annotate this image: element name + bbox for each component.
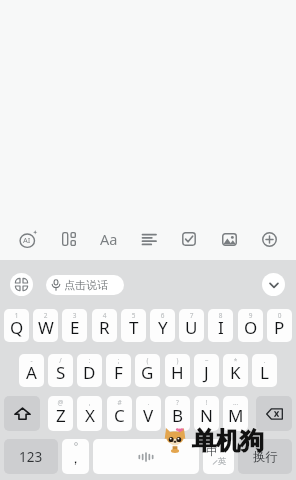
button[interactable]: Backspace <box>256 396 292 431</box>
staticText: M <box>228 404 244 427</box>
button[interactable]: Space <box>93 439 199 474</box>
button[interactable]: . <box>252 354 277 387</box>
button[interactable]: , <box>77 396 102 431</box>
staticText: W <box>38 316 54 339</box>
staticText: ) <box>165 356 190 365</box>
button[interactable]: ! <box>194 396 219 431</box>
staticText: Aa <box>100 229 118 249</box>
button[interactable]: 5 <box>121 309 146 342</box>
button[interactable]: 123 <box>4 439 58 474</box>
button[interactable]: 1 <box>4 309 29 342</box>
staticText: 1 <box>4 311 29 320</box>
staticText: / <box>48 356 73 365</box>
button[interactable]: Switch Chinese English <box>203 439 234 474</box>
staticText: , <box>77 398 102 407</box>
staticText: Q <box>10 316 24 339</box>
staticText: 点击说话 <box>64 278 108 292</box>
staticText: S <box>56 361 66 384</box>
button[interactable]: Font size <box>89 222 129 256</box>
staticText: 7 <box>179 311 204 320</box>
staticText: ， <box>69 450 82 466</box>
staticText: * <box>223 356 248 365</box>
staticText: … <box>223 398 248 407</box>
button[interactable]: ) <box>165 354 190 387</box>
staticText: X <box>85 404 95 427</box>
staticText: ? <box>165 398 190 407</box>
staticText: 中 <box>206 444 217 458</box>
button[interactable]: … <box>223 396 248 431</box>
button[interactable]: Hide keyboard <box>262 273 285 296</box>
button[interactable]: 0 <box>267 309 292 342</box>
staticText: F <box>114 361 123 384</box>
button[interactable]: Shift <box>4 396 40 431</box>
staticText: I <box>218 316 224 339</box>
staticText: # <box>107 398 132 407</box>
staticText: 换行 <box>253 449 278 465</box>
staticText: D <box>83 361 96 384</box>
button[interactable]: Text align <box>129 222 169 256</box>
button[interactable]: 4 <box>92 309 117 342</box>
button[interactable]: Insert image <box>209 222 249 256</box>
staticText: O <box>244 316 258 339</box>
staticText: - <box>19 356 44 365</box>
button[interactable]: 6 <box>150 309 175 342</box>
button[interactable]: Layout <box>48 222 89 256</box>
button[interactable]: AI assistant <box>7 222 48 256</box>
staticText: J <box>204 361 209 384</box>
staticText: . <box>136 398 161 407</box>
staticText: C <box>114 404 125 427</box>
staticText: N <box>200 404 213 427</box>
staticText: 单机狗 <box>192 426 264 456</box>
staticText: 9 <box>238 311 263 320</box>
staticText: 123 <box>19 448 43 466</box>
button[interactable]: 8 <box>208 309 233 342</box>
staticText: 6 <box>150 311 175 320</box>
button[interactable]: ; <box>106 354 131 387</box>
staticText: ( <box>135 356 160 365</box>
staticText: AI <box>23 235 31 245</box>
staticText: 英 <box>218 456 227 467</box>
button[interactable]: ? <box>165 396 190 431</box>
staticText: : <box>77 356 102 365</box>
button[interactable]: ~ <box>194 354 219 387</box>
staticText: @ <box>48 398 73 407</box>
staticText: ; <box>106 356 131 365</box>
button[interactable]: 点击说话 <box>46 275 124 295</box>
staticText: . <box>252 356 277 365</box>
staticText: K <box>230 361 241 384</box>
staticText: 2 <box>33 311 58 320</box>
button[interactable]: . <box>136 396 161 431</box>
button[interactable]: : <box>77 354 102 387</box>
staticText: ! <box>194 398 219 407</box>
staticText: 4 <box>92 311 117 320</box>
staticText: H <box>171 361 184 384</box>
button[interactable]: 3 <box>62 309 87 342</box>
staticText: Y <box>158 316 168 339</box>
button[interactable]: * <box>223 354 248 387</box>
button[interactable]: 2 <box>33 309 58 342</box>
button[interactable]: @ <box>48 396 73 431</box>
staticText: E <box>70 316 80 339</box>
button[interactable]: More <box>249 222 289 256</box>
staticText: P <box>274 316 285 339</box>
staticText: ~ <box>194 356 219 365</box>
staticText: U <box>185 316 198 339</box>
button[interactable]: Comma <box>62 439 89 474</box>
button[interactable]: - <box>19 354 44 387</box>
staticText: R <box>99 316 110 339</box>
button[interactable]: Checklist <box>169 222 209 256</box>
staticText: B <box>172 404 184 427</box>
staticText: 8 <box>208 311 233 320</box>
button[interactable]: ( <box>135 354 160 387</box>
button[interactable]: Keyboard panels <box>10 273 33 296</box>
staticText: L <box>260 361 269 384</box>
button[interactable]: # <box>107 396 132 431</box>
staticText: 3 <box>62 311 87 320</box>
staticText: G <box>141 361 154 384</box>
staticText: A <box>26 361 37 384</box>
button[interactable]: 换行 <box>238 439 292 474</box>
staticText: V <box>143 404 154 427</box>
button[interactable]: 9 <box>238 309 263 342</box>
button[interactable]: / <box>48 354 73 387</box>
button[interactable]: 7 <box>179 309 204 342</box>
